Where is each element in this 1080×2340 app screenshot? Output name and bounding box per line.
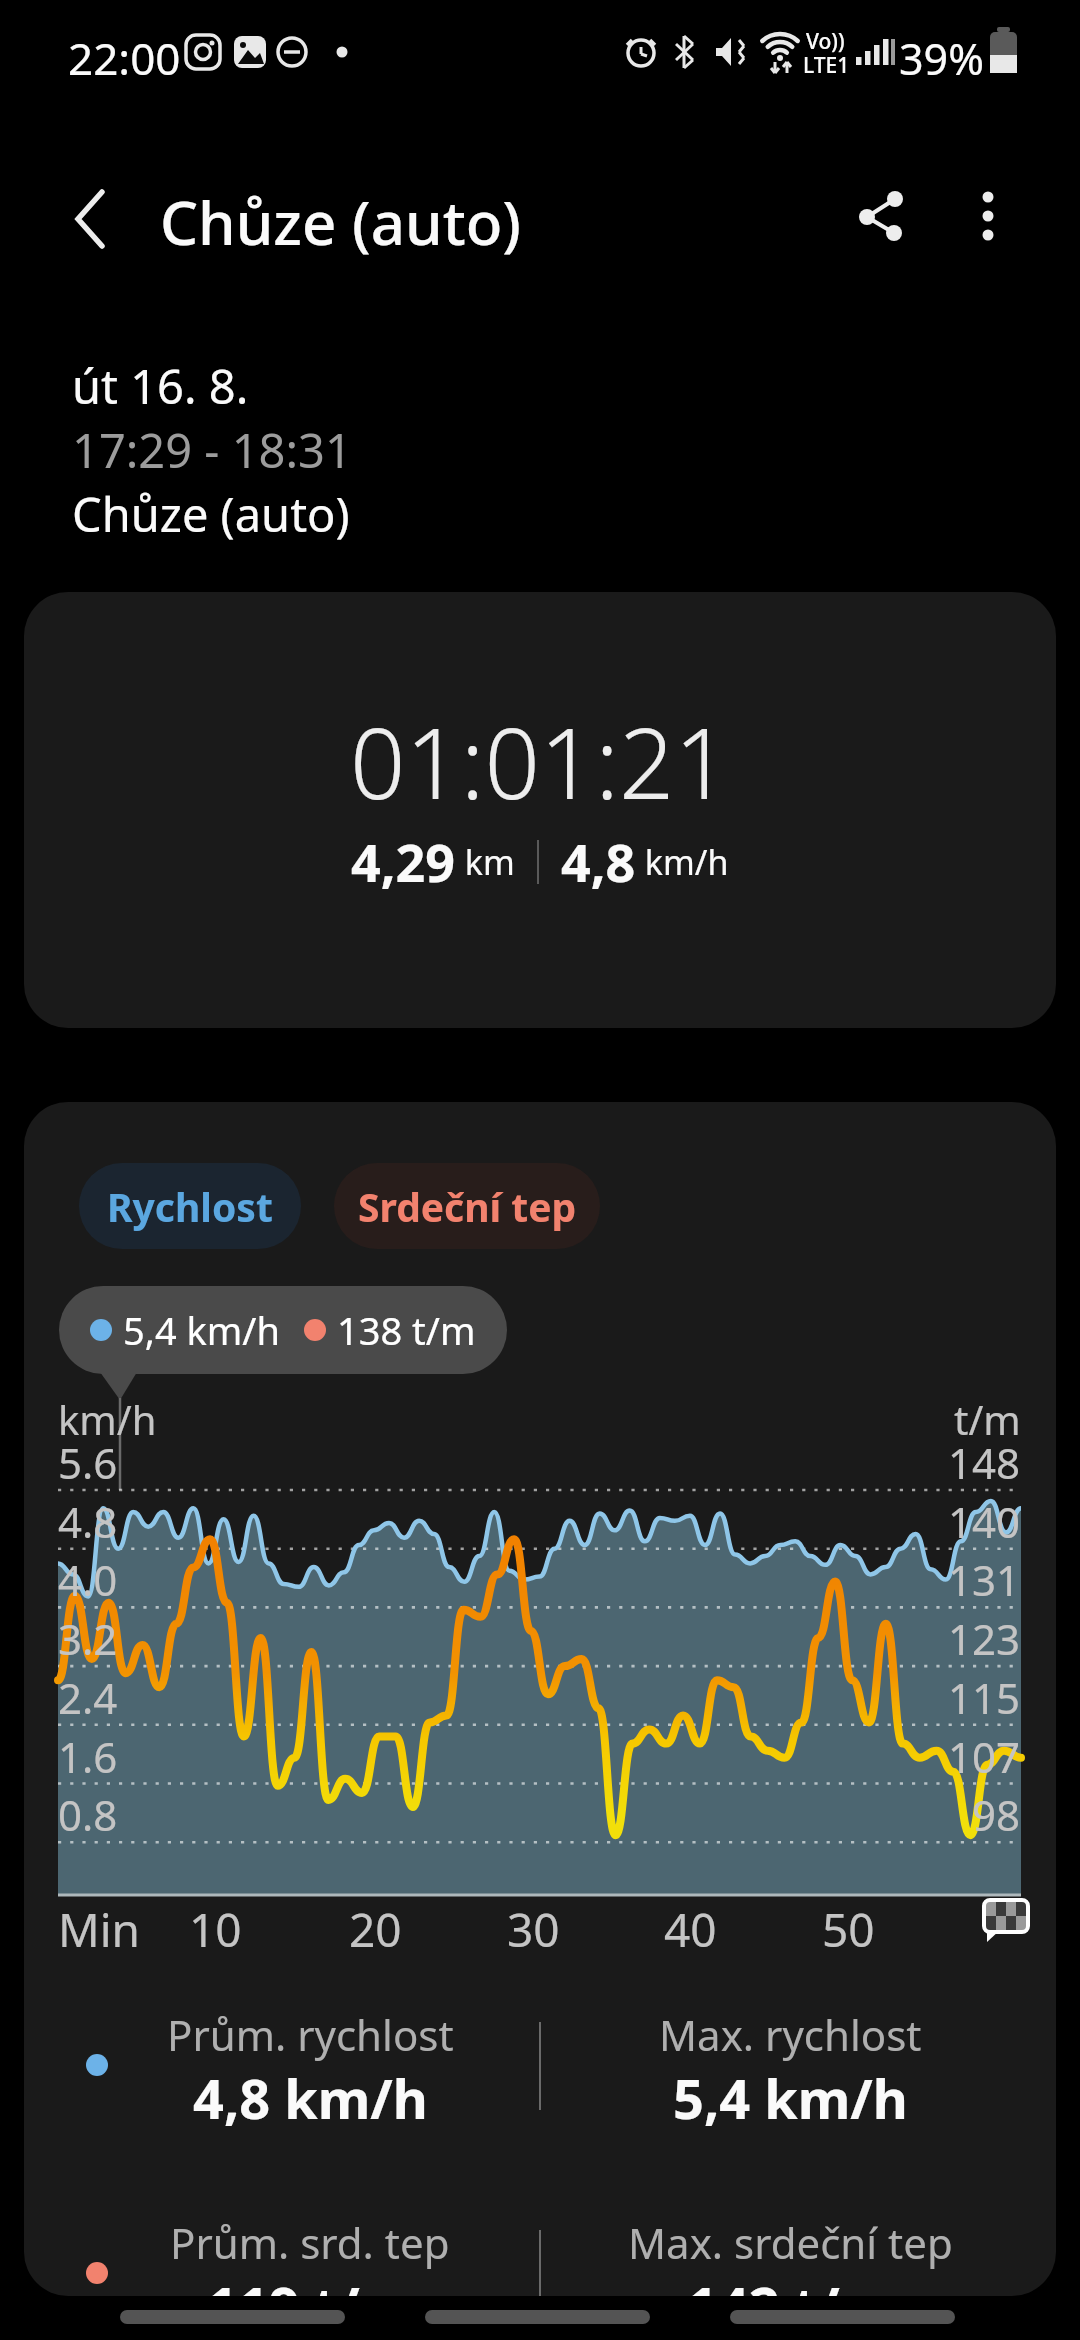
staticText: Chůze (auto)	[72, 482, 350, 546]
staticText: 10	[189, 1898, 242, 1961]
staticText: t/m	[954, 1392, 1021, 1446]
staticText: km	[456, 839, 515, 885]
staticText: 4.8	[58, 1493, 118, 1550]
staticText: Prům. srd. tep	[170, 2214, 450, 2271]
button[interactable]: Srdeční tep	[334, 1163, 600, 1249]
staticText: Srdeční tep	[358, 1180, 577, 1233]
staticText: 1.6	[58, 1728, 118, 1785]
staticText: Max. srdeční tep	[628, 2214, 953, 2271]
staticText: Chůze (auto)	[160, 181, 522, 263]
staticText: 115	[948, 1669, 1021, 1726]
staticText: Rychlost	[107, 1180, 273, 1233]
staticText: út 16. 8.	[72, 354, 249, 418]
staticText: 50	[822, 1898, 875, 1961]
staticText: 98	[972, 1786, 1021, 1843]
staticText: 17:29 - 18:31	[72, 418, 352, 482]
button[interactable]	[730, 2310, 955, 2324]
staticText: 142 t/m	[687, 2269, 893, 2296]
staticText: 4.0	[58, 1551, 118, 1608]
button[interactable]	[952, 180, 1024, 252]
staticText: 20	[349, 1898, 402, 1961]
staticText: 01:01:21	[350, 695, 730, 827]
staticText: LTE1	[803, 51, 850, 80]
button[interactable]: 01:01:21	[24, 592, 1056, 1028]
staticText: 119 t/m	[207, 2269, 413, 2296]
staticText: 5,4 km/h	[673, 2061, 908, 2135]
staticText: 4,8 km/h	[193, 2061, 428, 2135]
button[interactable]: Rychlost	[79, 1163, 301, 1249]
button[interactable]	[425, 2310, 650, 2324]
staticText: km/h	[58, 1392, 157, 1446]
staticText: 138 t/m	[337, 1304, 476, 1356]
staticText: 22:00	[68, 28, 181, 88]
staticText: 3.2	[58, 1610, 118, 1667]
staticText: Min	[58, 1898, 141, 1961]
staticText: 131	[948, 1551, 1021, 1608]
staticText: 39%	[899, 29, 984, 88]
staticText: km/h	[636, 839, 729, 885]
staticText: 5,4 km/h	[123, 1304, 280, 1356]
button[interactable]	[120, 2310, 345, 2324]
staticText: 30	[507, 1898, 560, 1961]
staticText: 0.8	[58, 1786, 118, 1843]
staticText: 123	[948, 1610, 1021, 1667]
button[interactable]	[845, 180, 917, 252]
staticText: 4,29	[351, 826, 456, 897]
staticText: 140	[948, 1493, 1021, 1550]
staticText: 40	[664, 1898, 717, 1961]
staticText: 107	[948, 1728, 1021, 1785]
staticText: 4,8	[561, 826, 636, 897]
staticText: Vo))	[806, 27, 845, 56]
staticText: 148	[948, 1434, 1021, 1491]
staticText: 5.6	[58, 1434, 118, 1491]
staticText: Prům. rychlost	[167, 2006, 454, 2063]
button[interactable]	[56, 186, 124, 254]
staticText: 2.4	[58, 1669, 118, 1726]
staticText: Max. rychlost	[659, 2006, 922, 2063]
